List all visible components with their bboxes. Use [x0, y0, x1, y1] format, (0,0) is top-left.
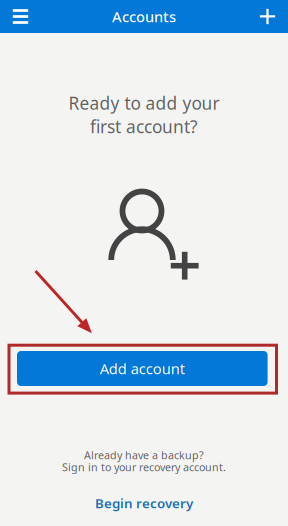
- button[interactable]: Menu: [0, 0, 41, 33]
- staticText: Accounts: [112, 7, 176, 26]
- button[interactable]: Begin recovery: [84, 489, 204, 517]
- button[interactable]: Add: [247, 0, 288, 33]
- button[interactable]: Add account: [17, 351, 268, 386]
- staticText: Add account: [100, 359, 185, 378]
- staticText: Ready to add your: [68, 91, 219, 114]
- staticText: Already have a backup?: [84, 448, 204, 462]
- staticText: Begin recovery: [95, 494, 193, 512]
- staticText: Sign in to your recovery account.: [62, 460, 226, 474]
- staticText: first account?: [90, 115, 198, 138]
